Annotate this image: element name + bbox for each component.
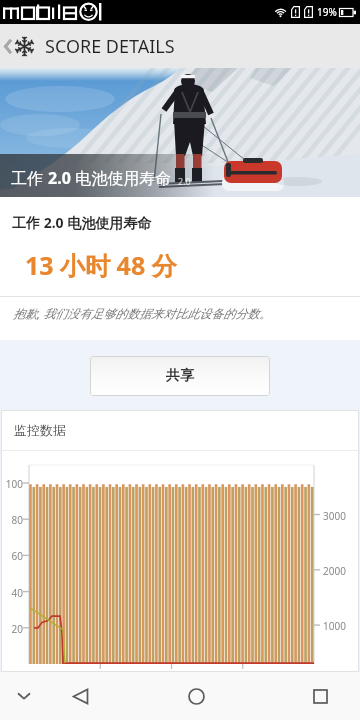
staticText: 共享 bbox=[166, 367, 194, 385]
staticText: 80 bbox=[1, 513, 23, 527]
button[interactable]: Back bbox=[48, 672, 112, 720]
staticText: 60 bbox=[1, 549, 23, 563]
staticText: 3000 bbox=[323, 509, 346, 523]
button[interactable]: SCORE DETAILS bbox=[0, 24, 360, 68]
staticText: 工作 2.0 电池使用寿命 bbox=[12, 213, 152, 232]
staticText: 抱歉, 我们没有足够的数据来对比此设备的分数。 bbox=[13, 305, 272, 321]
staticText: SCORE DETAILS bbox=[45, 34, 175, 59]
staticText: 2.0 bbox=[48, 167, 71, 189]
button[interactable]: 共享 bbox=[90, 356, 270, 396]
button[interactable]: Home bbox=[168, 672, 224, 720]
staticText: 2.0 bbox=[178, 175, 191, 187]
staticText: 监控数据 bbox=[14, 422, 66, 438]
staticText: 20 bbox=[1, 622, 23, 636]
staticText: 19% bbox=[317, 5, 337, 19]
staticText: 2000 bbox=[323, 564, 346, 578]
staticText: 100 bbox=[1, 477, 23, 491]
staticText: 电池使用寿命 bbox=[71, 167, 172, 189]
staticText: 1000 bbox=[323, 619, 346, 633]
button[interactable]: Recent apps bbox=[280, 672, 360, 720]
staticText: 工作 bbox=[11, 167, 48, 189]
button[interactable]: Hide keyboard bbox=[0, 672, 48, 720]
staticText: 13 小时 48 分 bbox=[25, 248, 177, 282]
staticText: 40 bbox=[1, 586, 23, 600]
